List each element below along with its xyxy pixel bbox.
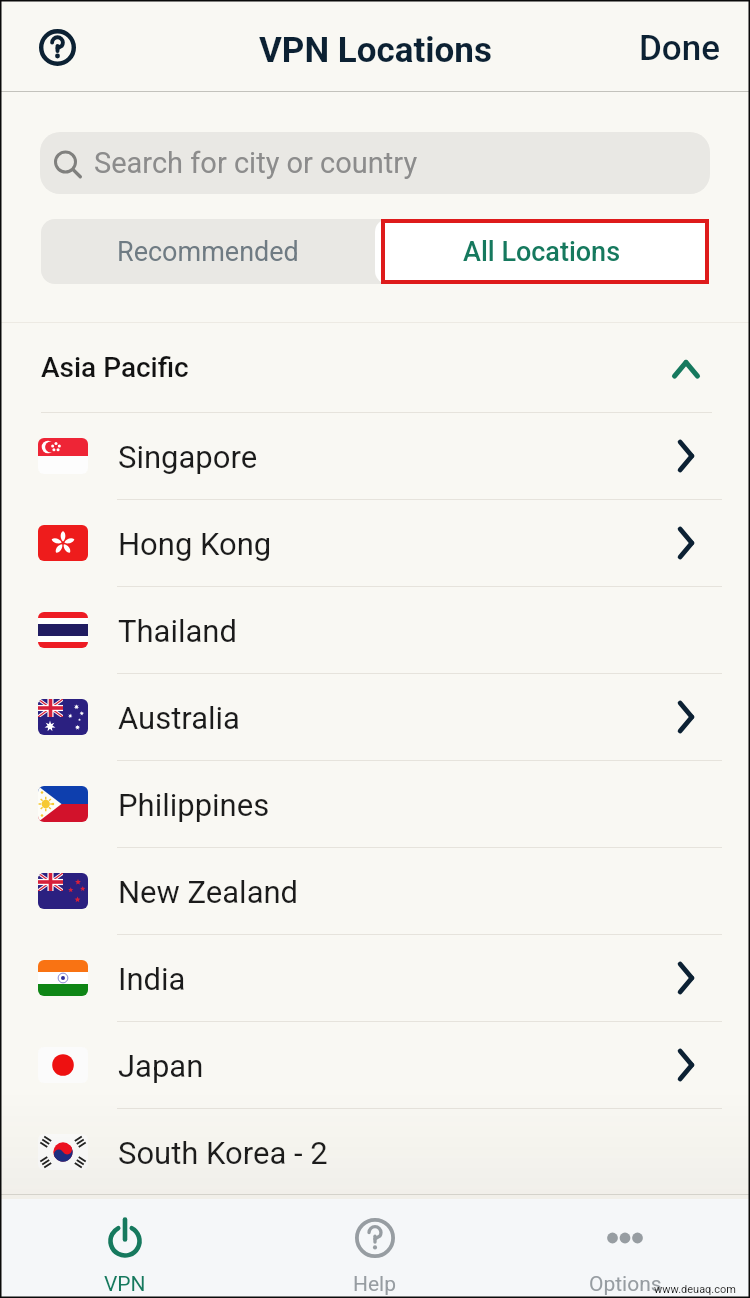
button[interactable]: VPN [0,1199,250,1298]
button[interactable]: Hong Kong [0,500,750,586]
staticText: Recommended [117,236,299,268]
staticText: VPN Locations [259,30,492,71]
button[interactable]: New Zealand [0,848,750,934]
button[interactable]: Asia Pacific [41,323,714,412]
button[interactable]: Australia [0,674,750,760]
button[interactable]: India [0,935,750,1021]
staticText: Australia [118,700,240,736]
staticText: Singapore [118,439,258,475]
staticText: Asia Pacific [41,351,189,384]
button[interactable]: Done [633,18,726,79]
button[interactable]: South Korea - 2 [0,1109,750,1194]
button[interactable]: Search for city or country [40,132,710,194]
staticText: Hong Kong [118,526,272,562]
staticText: All Locations [463,236,621,268]
staticText: South Korea - 2 [118,1135,328,1171]
staticText: Help [353,1272,397,1297]
button[interactable]: All Locations [375,219,709,284]
staticText: Philippines [118,787,270,823]
button[interactable]: Philippines [0,761,750,847]
staticText: New Zealand [118,874,299,910]
button[interactable]: Options [500,1199,750,1298]
button[interactable]: Japan [0,1022,750,1108]
staticText: Done [639,28,720,69]
staticText: Search for city or country [94,146,418,180]
staticText: Japan [118,1048,204,1084]
staticText: Thailand [118,613,237,649]
button[interactable]: Singapore [0,413,750,499]
staticText: VPN [104,1272,146,1297]
button[interactable]: Help [26,15,88,77]
button[interactable]: Recommended [41,219,375,284]
button[interactable]: Thailand [0,587,750,673]
button[interactable]: Help [250,1199,500,1298]
staticText: Options [589,1272,662,1297]
staticText: India [118,961,186,997]
staticText: www.deuaq.com [654,1283,736,1296]
